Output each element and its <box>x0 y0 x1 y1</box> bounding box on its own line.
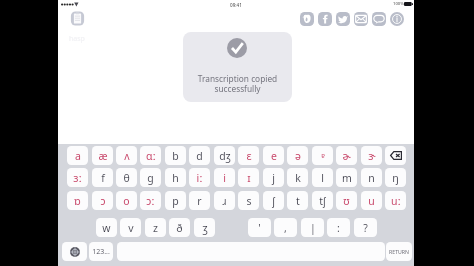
button[interactable]: j <box>263 168 284 187</box>
staticText: ʒ <box>202 221 208 235</box>
staticText: j <box>272 171 275 185</box>
button[interactable]: ? <box>354 218 377 237</box>
button[interactable]: , <box>274 218 297 237</box>
staticText: ʊ <box>343 194 350 208</box>
button[interactable]: θ <box>116 168 137 187</box>
button[interactable]: g <box>140 168 161 187</box>
staticText: tʃ <box>319 194 326 208</box>
staticText: g <box>147 171 154 185</box>
staticText: æ <box>98 149 108 163</box>
staticText: ɜː <box>73 171 82 185</box>
button[interactable]: tʃ <box>312 191 333 210</box>
staticText: uː <box>391 194 401 208</box>
button[interactable]: Switch keyboard <box>62 242 87 261</box>
staticText: e <box>271 149 277 163</box>
staticText: f <box>101 171 105 185</box>
staticText: θ <box>123 171 130 185</box>
button[interactable]: ɹ <box>214 191 235 210</box>
button[interactable]: Paste from clipboard <box>70 11 85 26</box>
staticText: z <box>153 221 158 235</box>
button[interactable]: Twitter <box>336 12 350 26</box>
button[interactable]: v <box>120 218 141 237</box>
button[interactable]: Backspace <box>385 146 406 165</box>
button[interactable]: u <box>361 191 382 210</box>
button[interactable]: ɔː <box>140 191 161 210</box>
button[interactable]: ə <box>287 146 308 165</box>
button[interactable]: ʌ <box>116 146 137 165</box>
staticText: v <box>128 221 134 235</box>
button[interactable]: Evernote <box>300 12 314 26</box>
button[interactable]: ʃ <box>263 191 284 210</box>
staticText: s <box>246 194 252 208</box>
staticText: 123... <box>92 247 110 257</box>
button[interactable]: e <box>263 146 284 165</box>
button[interactable]: ɔ <box>92 191 113 210</box>
button[interactable]: ɪ <box>238 168 259 187</box>
staticText: RETURN <box>389 248 409 255</box>
button[interactable]: ɒ <box>67 191 88 210</box>
button[interactable]: iː <box>189 168 210 187</box>
button[interactable]: z <box>145 218 166 237</box>
button[interactable]: ɐ <box>312 146 333 165</box>
staticText: m <box>342 171 352 185</box>
button[interactable]: m <box>336 168 357 187</box>
staticText: ɒ <box>74 194 81 208</box>
button[interactable]: h <box>165 168 186 187</box>
button[interactable]: b <box>165 146 186 165</box>
button[interactable]: | <box>301 218 324 237</box>
button[interactable]: ð <box>169 218 190 237</box>
button[interactable]: o <box>116 191 137 210</box>
staticText: r <box>197 194 202 208</box>
button[interactable]: ɜː <box>67 168 88 187</box>
staticText: ɔ <box>100 194 106 208</box>
staticText: ɚ <box>342 149 351 163</box>
staticText: d <box>196 149 203 163</box>
button[interactable]: n <box>361 168 382 187</box>
staticText: h <box>172 171 179 185</box>
button[interactable]: RETURN <box>386 242 412 261</box>
button[interactable]: f <box>92 168 113 187</box>
button[interactable]: dʒ <box>214 146 235 165</box>
staticText: i <box>223 171 226 185</box>
staticText: dʒ <box>219 149 231 163</box>
button[interactable]: r <box>189 191 210 210</box>
staticText: 09:41 <box>230 2 242 8</box>
button[interactable]: ɚ <box>336 146 357 165</box>
button[interactable]: Info <box>390 12 404 26</box>
button[interactable]: ʊ <box>336 191 357 210</box>
button[interactable]: s <box>238 191 259 210</box>
button[interactable]: w <box>96 218 117 237</box>
staticText: k <box>295 171 301 185</box>
button[interactable]: i <box>214 168 235 187</box>
button[interactable]: p <box>165 191 186 210</box>
button[interactable]: ' <box>248 218 271 237</box>
button[interactable]: ɝ <box>361 146 382 165</box>
button[interactable]: ɛ <box>238 146 259 165</box>
button[interactable]: a <box>67 146 88 165</box>
button[interactable]: æ <box>92 146 113 165</box>
staticText: ʃ <box>272 194 275 208</box>
button[interactable]: uː <box>385 191 406 210</box>
button[interactable]: Facebook <box>318 12 332 26</box>
staticText: a <box>75 149 81 163</box>
button[interactable]: t <box>287 191 308 210</box>
button[interactable]: : <box>327 218 350 237</box>
button[interactable]: k <box>287 168 308 187</box>
staticText: , <box>284 221 287 235</box>
button[interactable]: ŋ <box>385 168 406 187</box>
button[interactable]: ʒ <box>194 218 215 237</box>
staticText: w <box>102 221 111 235</box>
button[interactable]: Message <box>372 12 386 26</box>
staticText: hasp <box>69 34 85 44</box>
button[interactable]: ɑː <box>140 146 161 165</box>
button[interactable]: l <box>312 168 333 187</box>
button[interactable]: 123... <box>89 242 113 261</box>
staticText: p <box>172 194 179 208</box>
button[interactable]: Email <box>354 12 368 26</box>
staticText: ŋ <box>392 171 399 185</box>
staticText: o <box>123 194 130 208</box>
staticText: ɔː <box>146 194 155 208</box>
staticText: ? <box>363 221 368 235</box>
button[interactable]: d <box>189 146 210 165</box>
